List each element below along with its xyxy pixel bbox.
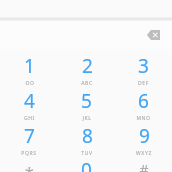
button[interactable]: 0	[58, 157, 115, 172]
button[interactable]: 4	[0, 87, 58, 122]
staticText: WXYZ	[136, 150, 152, 157]
staticText: TUV	[81, 150, 93, 157]
staticText: 5	[81, 88, 92, 114]
staticText: ABC	[81, 80, 93, 87]
button[interactable]: #	[115, 157, 172, 172]
staticText: 2	[82, 53, 93, 79]
staticText: 3	[138, 53, 149, 79]
button[interactable]: 1	[0, 52, 58, 87]
button[interactable]: 5	[58, 87, 115, 122]
staticText: MNO	[136, 115, 151, 122]
staticText: 0	[81, 157, 92, 172]
button[interactable]: 9	[115, 122, 172, 157]
staticText: PQRS	[21, 150, 37, 157]
staticText: DEF	[138, 80, 149, 87]
staticText: 9	[139, 123, 150, 149]
staticText: #	[139, 160, 149, 172]
button[interactable]: *	[0, 157, 58, 172]
staticText: 6	[138, 88, 149, 114]
staticText: 8	[82, 123, 93, 149]
staticText: 1	[24, 53, 35, 79]
button[interactable]: 8	[58, 122, 115, 157]
staticText: *	[25, 162, 34, 172]
button[interactable]: Backspace	[142, 24, 164, 46]
staticText: JKL	[82, 115, 92, 122]
button[interactable]: 2	[58, 52, 115, 87]
staticText: 7	[24, 123, 35, 149]
staticText: GHI	[24, 115, 35, 122]
staticText: OO	[25, 80, 35, 87]
button[interactable]: 6	[115, 87, 172, 122]
staticText: 4	[24, 88, 35, 114]
button[interactable]: 7	[0, 122, 58, 157]
button[interactable]: 3	[115, 52, 172, 87]
